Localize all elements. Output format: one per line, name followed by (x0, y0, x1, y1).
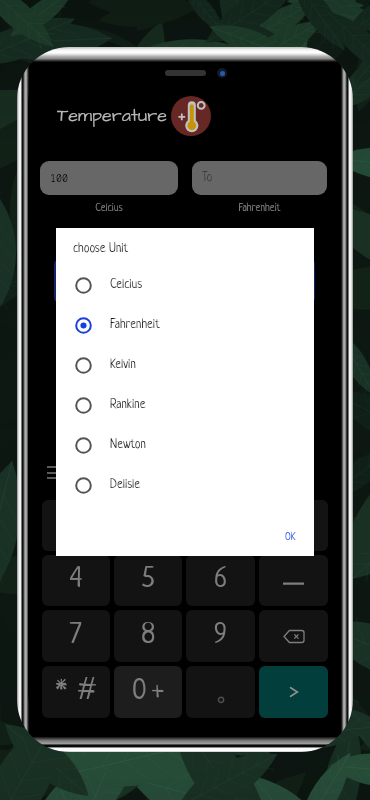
staticText: Newton (110, 438, 146, 452)
staticText: 100 (50, 171, 68, 185)
button[interactable]: Newton (56, 425, 314, 465)
staticText: Celcius (40, 203, 178, 215)
staticText: 5 (142, 565, 155, 596)
button[interactable]: Kelvin (56, 345, 314, 385)
staticText: 9 (214, 621, 227, 652)
staticText: + (152, 680, 164, 707)
button[interactable]: 0 (114, 666, 182, 718)
button[interactable]: 1 (42, 500, 110, 551)
button[interactable]: OK (267, 520, 314, 556)
staticText: 8 (141, 621, 156, 652)
button[interactable]: Dot (186, 666, 255, 718)
staticText: 7 (70, 621, 82, 652)
button[interactable]: Delisle (56, 465, 314, 505)
staticText: Temperature (57, 103, 167, 128)
other: Enter (288, 683, 300, 701)
staticText: Kelvin (110, 358, 136, 372)
staticText: choose Unit (73, 242, 129, 256)
staticText: # (78, 676, 97, 708)
button[interactable]: 6 (186, 555, 255, 606)
staticText: 4 (70, 565, 83, 596)
button[interactable]: Fahrenheit (56, 305, 314, 345)
button[interactable]: Dash (259, 555, 328, 606)
other: Backspace (284, 629, 304, 644)
other: Dash (283, 570, 304, 592)
staticText: Celcius (110, 278, 143, 292)
staticText: , (291, 510, 296, 541)
staticText: Rankine (110, 398, 146, 412)
button[interactable]: Rankine (56, 385, 314, 425)
button[interactable]: Menu (47, 466, 62, 479)
button[interactable]: 7 (42, 610, 110, 662)
button[interactable]: 9 (186, 610, 255, 662)
staticText: OK (285, 532, 296, 544)
button[interactable]: Backspace (259, 610, 328, 662)
button[interactable]: 4 (42, 555, 110, 606)
button[interactable]: 8 (114, 610, 182, 662)
button[interactable]: 100 (40, 161, 178, 195)
staticText: Delisle (110, 478, 141, 492)
button[interactable]: , (259, 500, 328, 551)
staticText: Fahrenheit (192, 203, 327, 215)
staticText: * (56, 679, 67, 711)
staticText: 0 (132, 677, 147, 708)
button[interactable]: * (42, 666, 110, 718)
button[interactable]: 5 (114, 555, 182, 606)
other: Dot (216, 679, 226, 705)
staticText: To (202, 171, 213, 185)
button[interactable]: Celcius (56, 265, 314, 305)
button[interactable]: Enter (259, 666, 328, 718)
staticText: 6 (214, 565, 227, 596)
button[interactable]: To (192, 161, 327, 195)
staticText: Fahrenheit (110, 318, 160, 332)
